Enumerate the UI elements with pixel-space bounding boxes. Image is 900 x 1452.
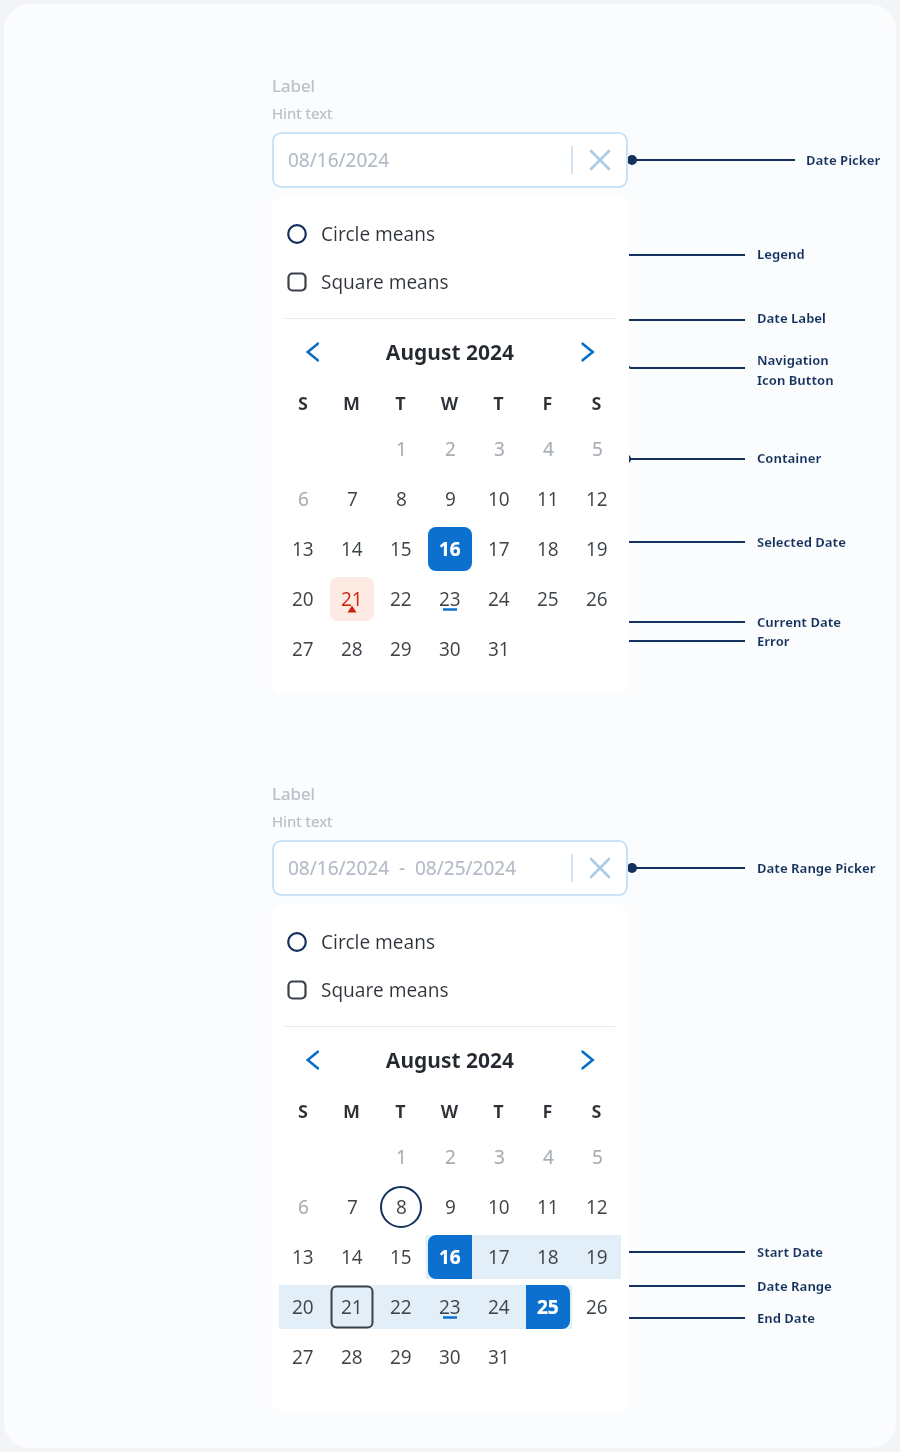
button[interactable]: 7 — [327, 474, 376, 524]
staticText: 8 — [396, 1194, 407, 1220]
staticText: 29 — [390, 1344, 412, 1370]
button[interactable]: 12 — [572, 474, 621, 524]
staticText: W — [425, 1099, 474, 1124]
button[interactable]: 6 — [279, 1182, 327, 1232]
button[interactable]: 5 — [572, 424, 621, 474]
button[interactable]: 8 — [376, 474, 425, 524]
button[interactable]: 12 — [572, 1182, 621, 1232]
staticText: Icon Button — [757, 371, 834, 389]
staticText: 9 — [445, 1194, 456, 1220]
button[interactable]: 27 — [279, 1332, 327, 1382]
button[interactable]: 26 — [572, 1282, 621, 1332]
staticText: W — [425, 391, 474, 416]
button[interactable]: 4 — [523, 424, 572, 474]
button[interactable]: 14 — [327, 524, 376, 574]
button[interactable]: 5 — [572, 1132, 621, 1182]
button[interactable]: 3 — [474, 424, 523, 474]
button[interactable]: 10 — [474, 474, 523, 524]
button[interactable]: 9 — [425, 1182, 474, 1232]
button[interactable]: 31 — [474, 1332, 523, 1382]
button[interactable]: 31 — [474, 624, 523, 674]
button[interactable]: 27 — [279, 624, 327, 674]
button[interactable]: 19 — [572, 524, 621, 574]
staticText: Date Picker — [806, 151, 881, 169]
button[interactable]: Circle means — [271, 918, 629, 966]
button[interactable]: 28 — [327, 624, 376, 674]
button[interactable]: 22 — [376, 574, 425, 624]
button[interactable]: 29 — [376, 624, 425, 674]
button[interactable]: 08/16/2024 - 08/25/2024 — [272, 840, 628, 896]
button[interactable]: 9 — [425, 474, 474, 524]
button[interactable]: Square means — [271, 966, 629, 1014]
button[interactable]: 24 — [474, 1282, 523, 1332]
button[interactable]: 8 — [376, 1182, 425, 1232]
button[interactable]: 23 — [425, 1282, 474, 1332]
button[interactable]: 17 — [474, 1232, 523, 1282]
button[interactable]: 15 — [376, 1232, 425, 1282]
button[interactable]: 24 — [474, 574, 523, 624]
staticText: Circle means — [321, 221, 436, 247]
button[interactable]: 17 — [474, 524, 523, 574]
staticText: S — [279, 1099, 327, 1124]
button[interactable]: Next month — [565, 1038, 609, 1082]
button[interactable]: 10 — [474, 1182, 523, 1232]
staticText: 4 — [543, 1144, 554, 1170]
button[interactable]: 6 — [279, 474, 327, 524]
button[interactable]: Circle means — [271, 210, 629, 258]
button[interactable]: 14 — [327, 1232, 376, 1282]
button[interactable]: 16 — [425, 1232, 474, 1282]
button[interactable]: 08/16/2024 — [272, 132, 628, 188]
button[interactable]: 22 — [376, 1282, 425, 1332]
staticText: T — [376, 391, 425, 416]
staticText: 12 — [586, 1194, 608, 1220]
button[interactable]: 16 — [425, 524, 474, 574]
staticText: 7 — [347, 1194, 358, 1220]
staticText: 17 — [488, 536, 510, 562]
button[interactable]: 2 — [425, 1132, 474, 1182]
button[interactable]: 13 — [279, 1232, 327, 1282]
staticText: 28 — [341, 1344, 363, 1370]
button[interactable]: 19 — [572, 1232, 621, 1282]
button[interactable]: Previous month — [291, 330, 335, 374]
button[interactable]: 25 — [523, 574, 572, 624]
button[interactable]: 25 — [523, 1282, 572, 1332]
staticText: 19 — [586, 536, 608, 562]
button[interactable]: 2 — [425, 424, 474, 474]
button[interactable]: 1 — [376, 1132, 425, 1182]
button[interactable]: 18 — [523, 524, 572, 574]
button[interactable]: 20 — [279, 574, 327, 624]
button[interactable]: Clear — [578, 846, 622, 890]
button[interactable]: 21 — [327, 574, 376, 624]
staticText: S — [572, 391, 621, 416]
button[interactable]: 29 — [376, 1332, 425, 1382]
button[interactable]: 18 — [523, 1232, 572, 1282]
button[interactable]: 28 — [327, 1332, 376, 1382]
staticText: F — [523, 1099, 572, 1124]
button[interactable]: 1 — [376, 424, 425, 474]
button[interactable]: 23 — [425, 574, 474, 624]
staticText: Square means — [321, 269, 449, 295]
staticText: Date Range Picker — [757, 859, 876, 877]
staticText: 19 — [586, 1244, 608, 1270]
staticText: August 2024 — [335, 338, 565, 367]
staticText: Current Date — [757, 613, 842, 631]
staticText: T — [474, 391, 523, 416]
button[interactable]: Next month — [565, 330, 609, 374]
button[interactable]: Square means — [271, 258, 629, 306]
button[interactable]: 4 — [523, 1132, 572, 1182]
button[interactable]: 11 — [523, 1182, 572, 1232]
button[interactable]: 20 — [279, 1282, 327, 1332]
button[interactable]: 30 — [425, 624, 474, 674]
button[interactable]: 26 — [572, 574, 621, 624]
button[interactable]: Previous month — [291, 1038, 335, 1082]
staticText: 16 — [439, 1244, 461, 1270]
button[interactable]: Clear — [578, 138, 622, 182]
button[interactable]: 7 — [327, 1182, 376, 1232]
staticText: 6 — [298, 1194, 309, 1220]
button[interactable]: 30 — [425, 1332, 474, 1382]
button[interactable]: 11 — [523, 474, 572, 524]
button[interactable]: 13 — [279, 524, 327, 574]
button[interactable]: 3 — [474, 1132, 523, 1182]
button[interactable]: 15 — [376, 524, 425, 574]
button[interactable]: 21 — [327, 1282, 376, 1332]
